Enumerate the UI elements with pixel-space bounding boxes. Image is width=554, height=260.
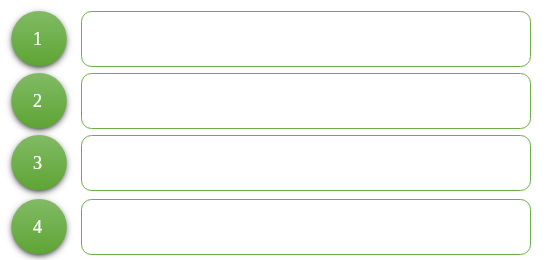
staticText: 1: [33, 29, 42, 49]
button[interactable]: Field 4: [81, 199, 531, 255]
button[interactable]: 4: [11, 199, 67, 255]
button[interactable]: Field 1: [81, 11, 531, 67]
button[interactable]: 3: [11, 135, 67, 191]
staticText: 4: [33, 217, 42, 237]
button[interactable]: 1: [11, 11, 67, 67]
staticText: 2: [33, 91, 42, 111]
staticText: 3: [33, 153, 42, 173]
button[interactable]: Field 2: [81, 73, 531, 129]
button[interactable]: Field 3: [81, 135, 531, 191]
button[interactable]: 2: [11, 73, 67, 129]
